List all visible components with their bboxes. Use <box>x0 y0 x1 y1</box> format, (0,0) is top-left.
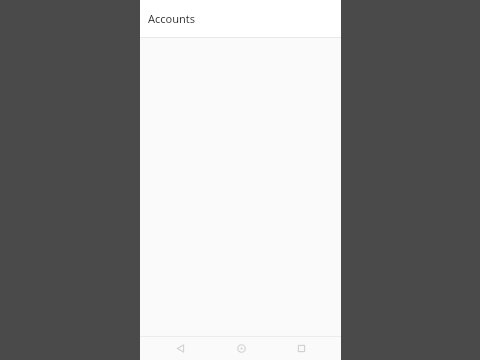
button[interactable]: Recents <box>281 337 321 360</box>
button[interactable]: Back <box>160 337 200 360</box>
button[interactable]: Home <box>221 337 261 360</box>
button[interactable]: Accounts <box>140 0 341 37</box>
staticText: Accounts <box>148 11 196 26</box>
